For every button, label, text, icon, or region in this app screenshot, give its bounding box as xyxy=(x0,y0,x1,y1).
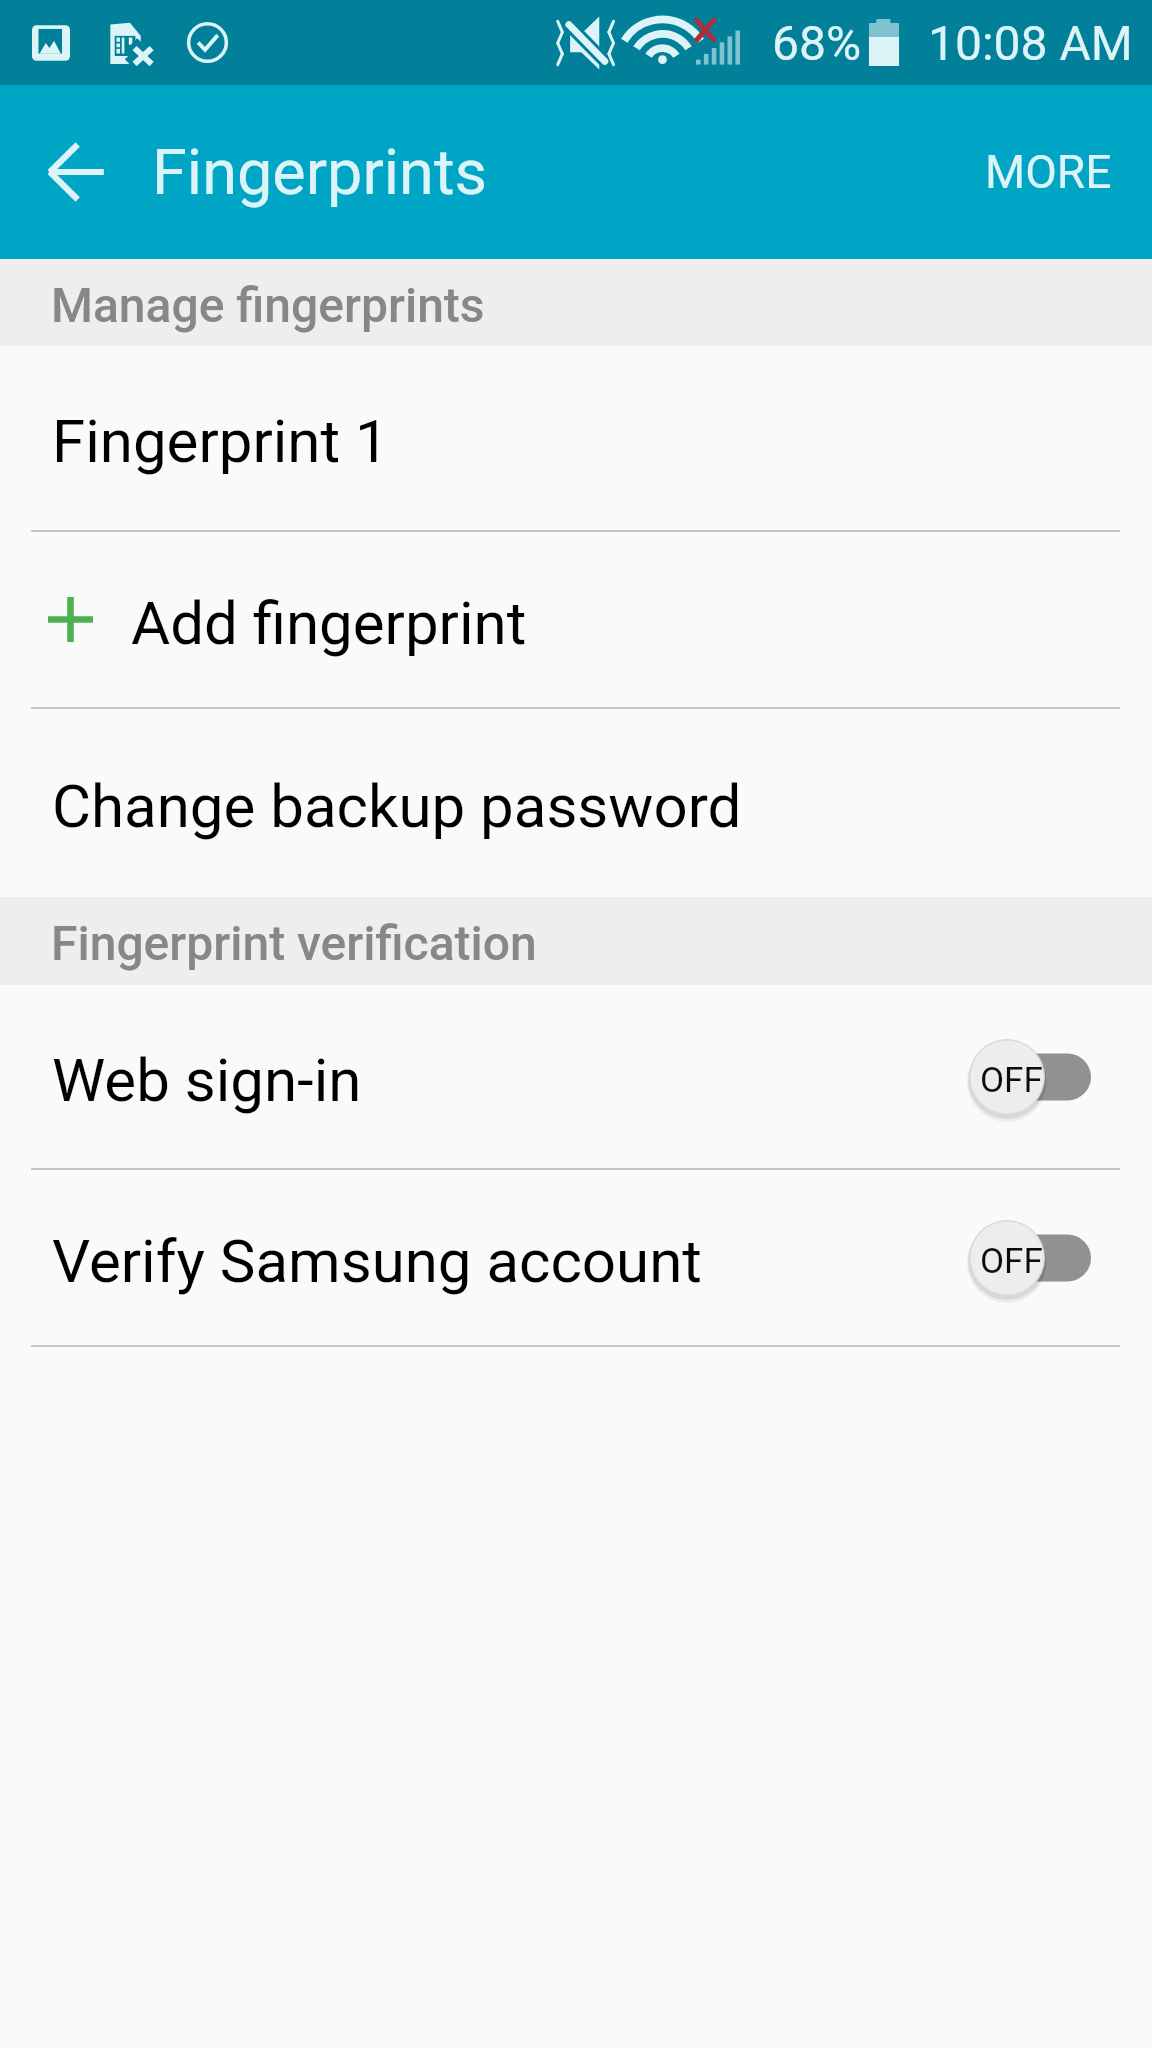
button[interactable]: Web sign-in xyxy=(0,985,1152,1168)
staticText: Fingerprint verification xyxy=(51,915,537,971)
button[interactable]: Toggle, off xyxy=(969,1218,1091,1298)
staticText: Verify Samsung account xyxy=(52,1226,702,1296)
staticText: Change backup password xyxy=(52,771,742,841)
staticText: Fingerprint 1 xyxy=(52,406,389,476)
button[interactable]: Change backup password xyxy=(0,709,1152,897)
staticText: 10:08 AM xyxy=(928,15,1133,71)
staticText: Web sign-in xyxy=(52,1045,362,1115)
staticText: OFF xyxy=(980,1241,1043,1282)
staticText: Fingerprints xyxy=(152,136,488,210)
button[interactable]: Fingerprint 1 xyxy=(0,346,1152,530)
button[interactable]: Navigate up xyxy=(20,112,132,232)
button[interactable]: MORE xyxy=(945,111,1152,233)
staticText: 68% xyxy=(772,15,862,71)
staticText: Manage fingerprints xyxy=(51,277,485,333)
button[interactable]: Verify Samsung account xyxy=(0,1170,1152,1345)
staticText: OFF xyxy=(980,1060,1043,1101)
button[interactable]: Toggle, off xyxy=(969,1037,1091,1117)
staticText: Add fingerprint xyxy=(131,588,527,658)
staticText: MORE xyxy=(985,145,1112,199)
button[interactable]: Add fingerprint xyxy=(0,532,1152,707)
